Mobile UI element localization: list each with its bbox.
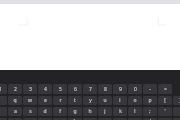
staticText: y [89,97,92,104]
staticText: 6 [74,86,77,93]
staticText: s [29,108,32,115]
button[interactable]: , [113,118,127,120]
button[interactable]: h [83,107,97,116]
staticText: 3 [29,86,32,93]
button[interactable]: 1 [0,84,7,94]
button[interactable]: = [158,84,172,94]
button[interactable]: n [83,118,97,120]
staticText: · [72,84,74,89]
staticText: j [104,108,106,115]
button[interactable]: c [38,118,52,120]
button[interactable]: [ [158,96,172,105]
staticText: e [44,97,47,104]
button[interactable]: l [128,107,142,116]
button[interactable]: j [98,107,112,116]
staticText: 7 [89,86,92,93]
button[interactable]: k [113,107,127,116]
button[interactable]: ' [158,107,172,116]
staticText: · [147,84,149,89]
staticText: ; [149,108,151,115]
button[interactable]: x [23,118,37,120]
staticText: · [57,84,59,89]
button[interactable]: t [68,96,82,105]
staticText: / [149,118,151,120]
button[interactable]: u [98,96,112,105]
staticText: d [43,108,47,115]
staticText: · [42,84,44,89]
button[interactable]: b [68,118,82,120]
staticText: · [162,84,164,89]
button[interactable] [158,118,172,120]
button[interactable]: 3 [23,84,37,94]
staticText: h [88,108,92,115]
staticText: w [28,97,32,104]
button[interactable]: 0 [128,84,142,94]
button[interactable]: ] [173,96,180,105]
button[interactable]: d [38,107,52,116]
button[interactable]: / [143,118,157,120]
staticText: t [74,97,76,104]
button[interactable]: q [8,96,22,105]
button[interactable]: . [128,118,142,120]
button[interactable]: 9 [113,84,127,94]
staticText: 0 [134,86,137,93]
staticText: 9 [119,86,122,93]
staticText: p [148,97,152,104]
staticText: r [59,97,62,104]
staticText: l [134,108,136,115]
staticText: · [87,84,89,89]
button[interactable]: f [53,107,67,116]
button[interactable]: s [23,107,37,116]
button[interactable]: y [83,96,97,105]
button[interactable]: 5 [53,84,67,94]
staticText: i [119,97,121,104]
button[interactable] [0,118,7,120]
staticText: u [103,97,107,104]
button[interactable]: p [143,96,157,105]
staticText: k [119,108,122,115]
button[interactable]: 2 [8,84,22,94]
staticText: · [27,84,29,89]
button[interactable]: - [143,84,157,94]
staticText: · [132,84,134,89]
staticText: [ [164,97,166,104]
button[interactable]: z [8,118,22,120]
button[interactable] [173,118,180,120]
button[interactable]: i [113,96,127,105]
staticText: g [73,108,77,115]
button[interactable]: 7 [83,84,97,94]
staticText: b [73,118,77,120]
staticText: - [149,86,151,93]
button[interactable]: v [53,118,67,120]
staticText: q [13,97,17,104]
button[interactable]: a [8,107,22,116]
button[interactable]: r [53,96,67,105]
button[interactable]: 6 [68,84,82,94]
button[interactable]: w [23,96,37,105]
button[interactable]: o [128,96,142,105]
button[interactable]: g [68,107,82,116]
button[interactable]: 8 [98,84,112,94]
button[interactable]: e [38,96,52,105]
staticText: ' [164,108,166,115]
button[interactable]: 4 [38,84,52,94]
staticText: 8 [104,86,107,93]
button[interactable]: m [98,118,112,120]
staticText: 5 [59,86,62,93]
staticText: ] [179,97,180,104]
staticText: f [59,108,61,115]
staticText: 4 [44,86,47,93]
button[interactable]: ; [143,107,157,116]
